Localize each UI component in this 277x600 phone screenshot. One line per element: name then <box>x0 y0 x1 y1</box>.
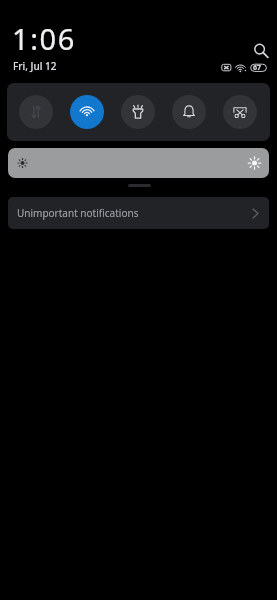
button[interactable]: Wi-Fi <box>61 83 112 141</box>
staticText: Unimportant notifications <box>17 206 139 220</box>
button[interactable]: Flashlight <box>112 83 163 141</box>
staticText: 1:06 <box>12 19 76 58</box>
button[interactable]: Screenshot <box>214 83 265 141</box>
staticText: 67 <box>253 63 262 73</box>
staticText: Fri, Jul 12 <box>13 59 57 73</box>
button[interactable]: Search <box>249 38 271 60</box>
button[interactable]: Notifications <box>163 83 214 141</box>
button[interactable]: Brightness <box>8 148 269 178</box>
button[interactable]: Unimportant notifications <box>8 197 269 229</box>
button[interactable]: Mobile data <box>10 83 61 141</box>
